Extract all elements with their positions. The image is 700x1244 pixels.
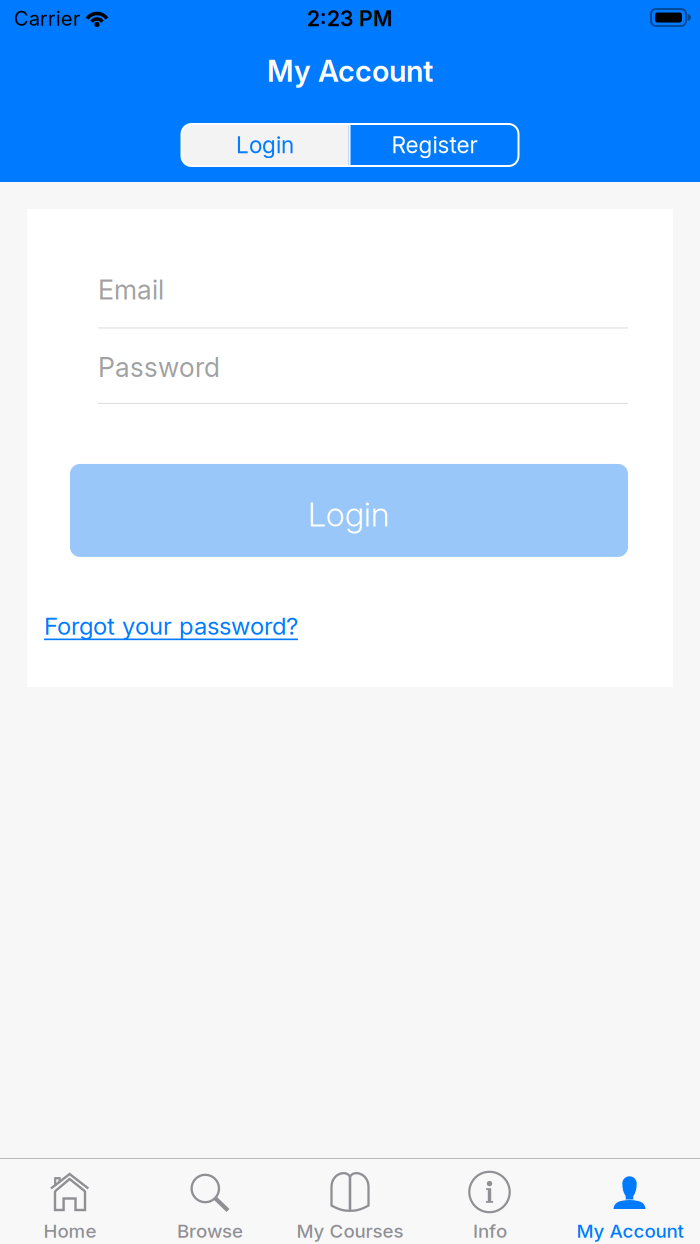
button[interactable]: Forgot your password?	[44, 612, 298, 640]
button[interactable]: My Account	[560, 1159, 700, 1244]
button[interactable]: Register	[350, 124, 518, 166]
button[interactable]: Password	[27, 351, 628, 404]
button[interactable]: Login	[70, 464, 628, 557]
staticText: Login	[236, 132, 294, 158]
staticText: My Account	[267, 54, 433, 88]
staticText: My Courses	[296, 1220, 403, 1242]
staticText: Browse	[177, 1220, 243, 1242]
staticText: Login	[308, 495, 390, 534]
button[interactable]: My Courses	[280, 1159, 420, 1244]
button[interactable]: Login	[181, 124, 348, 166]
button[interactable]: Browse	[140, 1159, 280, 1244]
staticText: Password	[98, 351, 220, 383]
staticText: Register	[391, 132, 477, 158]
staticText: My Account	[576, 1220, 683, 1242]
staticText: Info	[473, 1220, 507, 1242]
staticText: Forgot your password?	[44, 612, 298, 640]
button[interactable]: Info	[420, 1159, 560, 1244]
button[interactable]: Home	[0, 1159, 140, 1244]
staticText: Carrier	[14, 7, 80, 30]
staticText: Email	[98, 274, 164, 305]
staticText: Home	[43, 1220, 96, 1242]
button[interactable]: Email	[27, 274, 628, 328]
staticText: 2:23 PM	[307, 6, 393, 31]
